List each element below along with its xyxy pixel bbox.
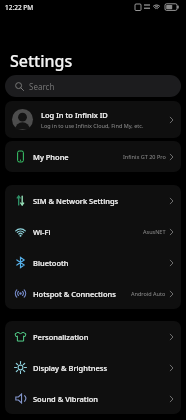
staticText: Sound & Vibration xyxy=(33,394,98,404)
button[interactable]: Log In to Infinix ID xyxy=(5,101,181,138)
button[interactable]: Bluetooth xyxy=(5,247,181,278)
button[interactable]: Search xyxy=(5,75,181,97)
button[interactable]: Personalization xyxy=(5,321,181,352)
staticText: AsusNET xyxy=(143,228,166,235)
staticText: Display & Brightness xyxy=(33,363,108,373)
staticText: Infinix GT 20 Pro xyxy=(123,153,166,160)
staticText: Search xyxy=(29,81,55,92)
button[interactable]: Sound & Vibration xyxy=(5,383,181,414)
staticText: 12:22 PM xyxy=(5,3,34,12)
staticText: Android Auto xyxy=(131,290,166,297)
staticText: Wi-Fi xyxy=(33,227,51,237)
button[interactable]: Hotspot & Connections xyxy=(5,278,181,309)
staticText: Hotspot & Connections xyxy=(33,289,116,299)
button[interactable]: SIM & Network Settings xyxy=(5,185,181,216)
button[interactable]: Display & Brightness xyxy=(5,352,181,383)
staticText: SIM & Network Settings xyxy=(33,196,119,206)
staticText: My Phone xyxy=(33,152,69,162)
button[interactable]: My Phone xyxy=(5,141,181,172)
staticText: Log In to Infinix ID xyxy=(41,110,108,120)
staticText: Personalization xyxy=(33,332,89,342)
staticText: Settings xyxy=(10,50,73,72)
button[interactable]: Wi-Fi xyxy=(5,216,181,247)
staticText: Bluetooth xyxy=(33,258,69,268)
staticText: Log in to use Infinix Cloud, Find My, et… xyxy=(41,122,144,129)
